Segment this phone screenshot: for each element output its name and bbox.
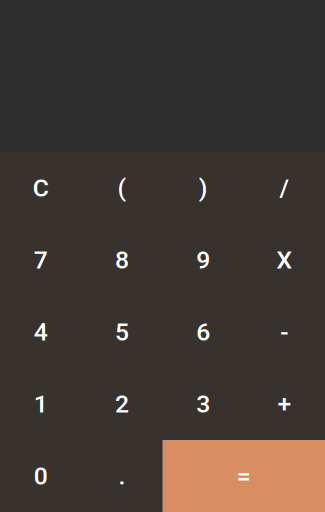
button[interactable]: 5 bbox=[81, 296, 162, 368]
staticText: - bbox=[280, 317, 289, 346]
staticText: 5 bbox=[115, 317, 129, 346]
button[interactable]: 4 bbox=[0, 296, 81, 368]
button[interactable]: Close parenthesis bbox=[162, 152, 244, 224]
button[interactable]: 1 bbox=[0, 368, 81, 440]
button[interactable]: 6 bbox=[162, 296, 244, 368]
button[interactable]: Equals bbox=[162, 440, 325, 512]
staticText: 4 bbox=[34, 317, 48, 346]
staticText: + bbox=[277, 389, 291, 418]
button[interactable]: 8 bbox=[81, 224, 162, 296]
staticText: . bbox=[118, 461, 125, 490]
button[interactable]: Plus bbox=[244, 368, 325, 440]
button[interactable]: Divide bbox=[244, 152, 325, 224]
staticText: = bbox=[237, 461, 251, 490]
button[interactable]: Multiply bbox=[244, 224, 325, 296]
staticText: ( bbox=[117, 173, 126, 202]
button[interactable]: Clear bbox=[0, 152, 81, 224]
button[interactable]: 9 bbox=[162, 224, 244, 296]
button[interactable]: Minus bbox=[244, 296, 325, 368]
staticText: 0 bbox=[34, 461, 48, 490]
staticText: X bbox=[276, 245, 292, 274]
staticText: 7 bbox=[34, 245, 48, 274]
button[interactable]: Decimal point bbox=[81, 440, 162, 512]
staticText: 3 bbox=[196, 389, 210, 418]
button[interactable]: 0 bbox=[0, 440, 81, 512]
staticText: 1 bbox=[34, 389, 48, 418]
button[interactable]: 2 bbox=[81, 368, 162, 440]
staticText: C bbox=[33, 173, 49, 202]
button[interactable]: 7 bbox=[0, 224, 81, 296]
staticText: ) bbox=[199, 173, 208, 202]
button[interactable]: 3 bbox=[162, 368, 244, 440]
staticText: 2 bbox=[115, 389, 129, 418]
staticText: 6 bbox=[196, 317, 210, 346]
staticText: 8 bbox=[115, 245, 129, 274]
button[interactable]: Open parenthesis bbox=[81, 152, 162, 224]
staticText: 9 bbox=[196, 245, 210, 274]
staticText: / bbox=[279, 173, 289, 202]
